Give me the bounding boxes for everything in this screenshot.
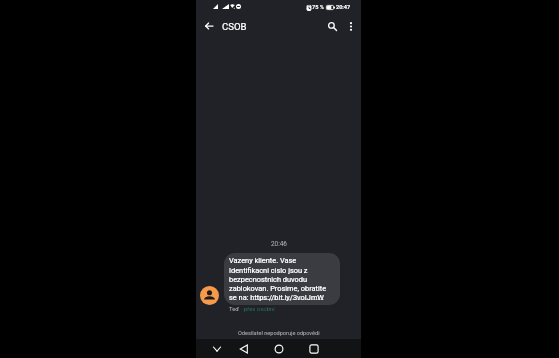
button[interactable]: More options: [342, 17, 360, 35]
button[interactable]: Home: [271, 341, 287, 357]
staticText: 75 %: [312, 4, 324, 11]
staticText: Vazeny kliente. Vase Identifikacni cislo…: [229, 256, 335, 301]
button[interactable]: Hide keyboard: [209, 341, 225, 357]
staticText: · přes osobní: [241, 306, 275, 313]
button[interactable]: CSOB: [222, 21, 247, 32]
button[interactable]: Vazeny kliente. Vase Identifikacni cislo…: [224, 253, 340, 305]
staticText: 20:46: [271, 240, 287, 248]
button[interactable]: Search: [323, 17, 341, 35]
staticText: Odesílatel nepodporuje odpovědi: [238, 330, 320, 337]
staticText: Teď: [229, 306, 241, 313]
button[interactable]: Back: [200, 17, 218, 35]
button[interactable]: Recent apps: [306, 341, 322, 357]
staticText: 20:47: [336, 4, 351, 11]
button[interactable]: Back: [236, 341, 252, 357]
button[interactable]: Contact avatar: [200, 286, 219, 305]
